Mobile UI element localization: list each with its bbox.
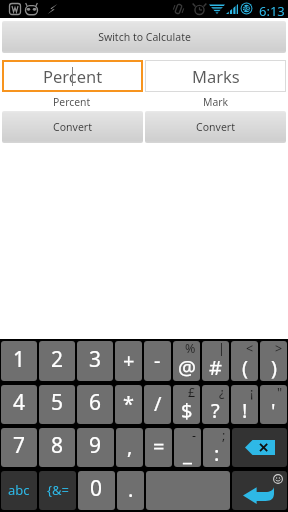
staticText: Convert	[196, 120, 235, 134]
staticText: )	[271, 354, 277, 381]
staticText: $	[181, 397, 193, 424]
staticText: 4	[13, 388, 26, 417]
button[interactable]: (	[231, 341, 258, 381]
button[interactable]: *	[115, 385, 142, 424]
button[interactable]: /	[144, 385, 171, 424]
staticText: Convert	[53, 120, 92, 134]
button[interactable]: +	[115, 341, 142, 381]
button[interactable]: 3	[77, 341, 113, 381]
staticText: %	[185, 341, 196, 357]
button[interactable]: !	[231, 385, 258, 424]
staticText: _	[183, 440, 192, 467]
button[interactable]: {&=	[39, 471, 76, 510]
staticText: 98	[242, 4, 251, 14]
staticText: Mark	[203, 95, 229, 109]
staticText: Marks	[192, 65, 240, 87]
staticText: |	[218, 341, 225, 357]
staticText: 6	[89, 388, 102, 417]
button[interactable]	[146, 471, 230, 510]
staticText: #	[209, 354, 222, 381]
staticText: abc	[8, 481, 30, 499]
staticText: -	[192, 428, 197, 444]
staticText: {&=	[47, 481, 69, 499]
staticText: 0	[90, 474, 103, 503]
button[interactable]: 4	[1, 385, 37, 424]
button[interactable]: Switch to Calculate	[2, 21, 286, 53]
staticText: 3	[89, 345, 102, 374]
staticText: Percent	[53, 95, 91, 109]
staticText: =	[153, 433, 165, 460]
button[interactable]: $	[173, 385, 200, 424]
staticText: 1	[13, 345, 26, 374]
button[interactable]: ?	[202, 385, 229, 424]
staticText: (	[242, 354, 248, 381]
staticText: @	[178, 354, 196, 381]
staticText: 6:13	[259, 2, 285, 20]
button[interactable]: Convert	[145, 111, 286, 143]
staticText: 2	[51, 345, 64, 374]
button[interactable]: @	[173, 341, 200, 381]
staticText: Switch to Calculate	[98, 30, 191, 44]
staticText: /	[154, 390, 162, 417]
staticText: -	[154, 347, 161, 374]
button[interactable]: 6	[77, 385, 113, 424]
button[interactable]: 2	[39, 341, 75, 381]
staticText: !	[242, 397, 248, 424]
button[interactable]: #	[202, 341, 229, 381]
button[interactable]: )	[260, 341, 287, 381]
staticText: ?	[211, 397, 220, 424]
staticText: 7	[13, 431, 26, 460]
button[interactable]: 7	[1, 428, 37, 467]
button[interactable]: _	[174, 428, 201, 467]
button[interactable]: :	[203, 428, 230, 467]
staticText: .	[128, 476, 134, 503]
staticText: :	[214, 440, 220, 467]
staticText: +	[123, 347, 135, 374]
button[interactable]: -	[144, 341, 171, 381]
button[interactable]: del	[232, 428, 287, 467]
button[interactable]: '	[260, 385, 287, 424]
staticText: ;	[222, 428, 226, 444]
button[interactable]: Convert	[2, 111, 143, 143]
button[interactable]: .	[117, 471, 144, 510]
button[interactable]: Percent	[2, 60, 143, 92]
button[interactable]: 1	[1, 341, 37, 381]
button[interactable]: ,	[116, 428, 143, 467]
staticText: 8	[51, 431, 64, 460]
button[interactable]: enter	[232, 471, 287, 510]
staticText: '	[271, 397, 276, 424]
button[interactable]: Marks	[145, 60, 286, 92]
staticText: 5	[51, 388, 64, 417]
button[interactable]: 9	[77, 428, 114, 467]
staticText: >	[275, 341, 283, 357]
button[interactable]: 8	[39, 428, 75, 467]
staticText: *	[123, 390, 135, 417]
staticText: 9	[89, 431, 102, 460]
staticText: £	[188, 385, 196, 401]
button[interactable]: 0	[78, 471, 115, 510]
button[interactable]: 5	[39, 385, 75, 424]
staticText: ,	[127, 433, 133, 460]
staticText: ¡	[250, 385, 254, 401]
staticText: Percent	[43, 65, 103, 87]
staticText: ¿	[219, 385, 225, 401]
button[interactable]: =	[145, 428, 172, 467]
button[interactable]: abc	[1, 471, 37, 510]
staticText: "	[277, 385, 283, 401]
staticText: <	[246, 341, 254, 357]
